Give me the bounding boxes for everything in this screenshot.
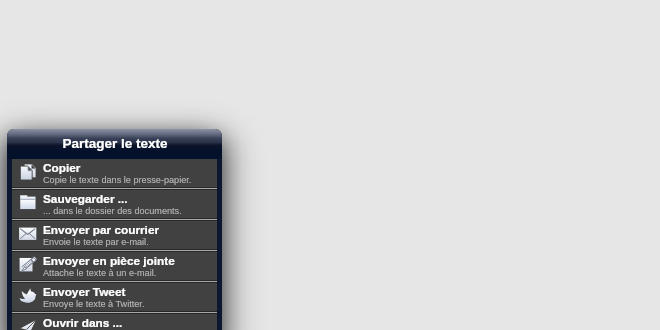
staticText: Ouvrir dans ... xyxy=(43,316,123,329)
staticText: Envoyer en pièce jointe xyxy=(43,254,175,267)
button[interactable]: Envoyer par courrier xyxy=(12,221,217,249)
staticText: Copier xyxy=(43,161,81,174)
button[interactable]: Copier xyxy=(12,159,217,187)
staticText: Attache le texte à un e-mail. xyxy=(43,268,157,278)
staticText: Envoyer par courrier xyxy=(43,223,160,236)
button[interactable]: Envoyer en pièce jointe xyxy=(12,252,217,280)
button[interactable]: Sauvegarder ... xyxy=(12,190,217,218)
staticText: ... dans le dossier des documents. xyxy=(43,206,182,216)
staticText: Copie le texte dans le presse-papier. xyxy=(43,175,192,185)
staticText: Envoye le texte à Twitter. xyxy=(43,299,145,309)
button[interactable]: Ouvrir dans ... xyxy=(12,314,217,330)
staticText: Envoyer Tweet xyxy=(43,285,126,298)
button[interactable]: Envoyer Tweet xyxy=(12,283,217,311)
staticText: Sauvegarder ... xyxy=(43,192,128,205)
staticText: Partager le texte xyxy=(62,136,168,151)
staticText: Envoie le texte par e-mail. xyxy=(43,237,149,247)
